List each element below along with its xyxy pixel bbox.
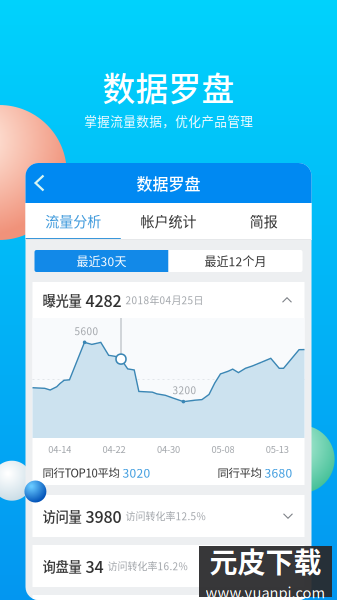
staticText: 3680	[264, 464, 292, 481]
staticText: 5600	[74, 324, 98, 338]
staticText: 05-13	[266, 442, 289, 456]
staticText: 数据罗盘	[136, 171, 200, 195]
staticText: 同行TOP10平均	[42, 464, 122, 481]
staticText: 2018年04月25日	[121, 293, 203, 307]
staticText: 3200	[172, 383, 196, 397]
staticText: 访问转化率16.2%	[103, 559, 187, 573]
button[interactable]: 收起	[275, 291, 298, 309]
staticText: www.yuanpi.com	[205, 581, 325, 600]
button[interactable]: 询盘量	[32, 545, 304, 587]
staticText: 帐户统计	[140, 210, 196, 231]
staticText: 访问量	[42, 506, 81, 526]
staticText: 04-22	[103, 442, 126, 456]
staticText: 3020	[122, 464, 150, 481]
staticText: 访问转化率12.5%	[121, 509, 205, 523]
staticText: 最近30天	[76, 252, 126, 270]
staticText: 05-08	[211, 442, 234, 456]
button[interactable]: 访问量	[32, 495, 304, 537]
staticText: 3980	[81, 504, 121, 528]
staticText: 同行平均	[217, 464, 264, 481]
staticText: 简报	[250, 210, 278, 231]
button[interactable]: 流量分析	[25, 203, 121, 240]
staticText: 数据罗盘	[102, 63, 234, 110]
staticText: 最近12个月	[204, 252, 266, 270]
button[interactable]: 最近30天	[34, 250, 168, 272]
staticText: 34	[81, 554, 103, 578]
button[interactable]: 返回	[25, 163, 57, 202]
staticText: 询盘量	[42, 556, 81, 576]
staticText: 流量分析	[45, 210, 101, 231]
staticText: 04-14	[48, 442, 71, 456]
button[interactable]: 帐户统计	[121, 203, 216, 240]
staticText: 元皮下载	[209, 541, 321, 581]
staticText: 4282	[81, 288, 121, 312]
button[interactable]: 最近12个月	[168, 250, 302, 272]
button[interactable]: 简报	[216, 203, 311, 240]
staticText: 曝光量	[42, 290, 81, 310]
staticText: 掌握流量数据，优化产品管理	[84, 111, 253, 130]
staticText: 04-30	[157, 442, 180, 456]
